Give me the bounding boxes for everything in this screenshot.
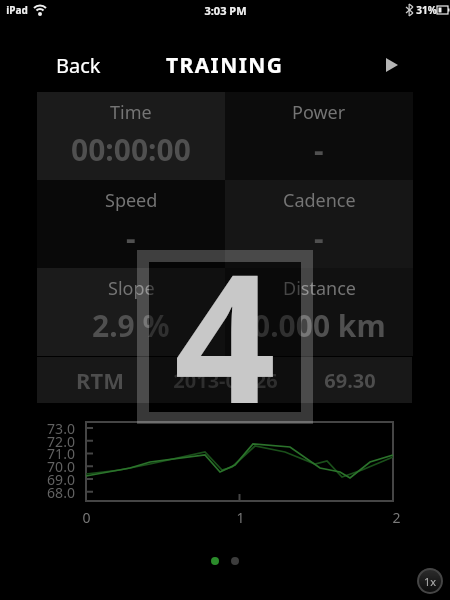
button[interactable]: [37, 357, 412, 403]
staticText: -: [314, 129, 324, 170]
button[interactable]: Speed: [37, 180, 225, 268]
button[interactable]: Distance: [225, 268, 413, 356]
staticText: 1x: [424, 574, 437, 589]
staticText: -: [314, 217, 324, 258]
staticText: Cadence: [283, 188, 356, 213]
staticText: 73.0: [47, 419, 75, 438]
staticText: iPad: [6, 3, 28, 17]
staticText: 2.9 %: [92, 305, 170, 346]
staticText: 70.0: [47, 457, 75, 476]
button[interactable]: [386, 58, 398, 72]
staticText: TRAINING: [166, 51, 284, 80]
button[interactable]: Cadence: [225, 180, 413, 268]
staticText: Distance: [283, 276, 356, 301]
button[interactable]: Slope: [37, 268, 225, 356]
staticText: Time: [110, 100, 152, 125]
staticText: 3:03 PM: [204, 3, 247, 18]
staticText: 71.0: [47, 444, 75, 463]
staticText: 1: [236, 508, 245, 527]
staticText: 69.0: [47, 470, 75, 489]
staticText: 31%: [416, 3, 437, 17]
button[interactable]: Power: [225, 92, 413, 180]
staticText: 2: [392, 508, 401, 527]
staticText: 69.30: [324, 367, 376, 394]
staticText: 68.0: [47, 483, 75, 502]
staticText: -: [126, 217, 136, 258]
staticText: 4: [174, 213, 276, 453]
button[interactable]: [211, 557, 219, 565]
staticText: Back: [56, 52, 101, 79]
button[interactable]: 1x: [417, 568, 443, 594]
staticText: RTM: [76, 365, 124, 395]
staticText: 00:00:00: [71, 129, 191, 170]
staticText: 0: [82, 508, 91, 527]
staticText: 72.0: [47, 432, 75, 451]
staticText: Slope: [108, 276, 155, 301]
button[interactable]: Time: [37, 92, 225, 180]
button[interactable]: Back: [36, 48, 120, 82]
staticText: 0.000 km: [253, 305, 386, 346]
staticText: Power: [292, 100, 346, 125]
staticText: 2013-07-26: [173, 367, 278, 394]
staticText: Speed: [105, 188, 158, 213]
button[interactable]: [231, 557, 239, 565]
